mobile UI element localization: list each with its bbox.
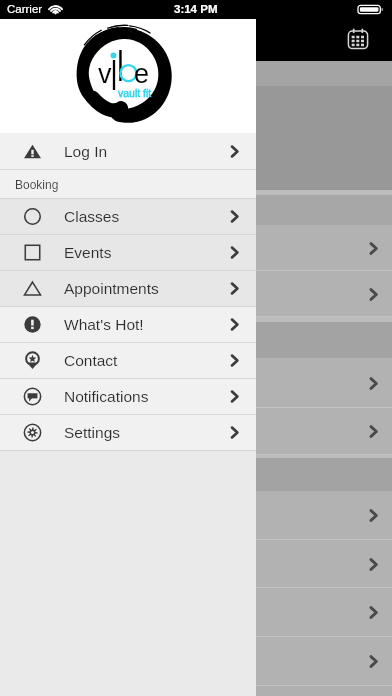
- other: Open: [369, 655, 378, 668]
- staticText: Events: [64, 244, 112, 261]
- staticText: Classes: [64, 208, 120, 225]
- other: Open: [369, 425, 378, 438]
- staticText: 3:14 PM: [174, 3, 218, 16]
- button[interactable]: Settings: [0, 415, 256, 450]
- button[interactable]: Open: [0, 271, 392, 317]
- staticText: Log In: [64, 143, 108, 160]
- button[interactable]: Events: [0, 235, 256, 270]
- button[interactable]: Log In: [0, 133, 256, 169]
- button[interactable]: Classes: [0, 199, 256, 234]
- button[interactable]: What's Hot!: [0, 307, 256, 342]
- other: Open: [369, 558, 378, 571]
- staticText: Contact: [64, 352, 118, 369]
- other: Open: [369, 377, 378, 390]
- button[interactable]: Contact: [0, 343, 256, 378]
- button[interactable]: Open: [0, 540, 392, 588]
- staticText: Notifications: [64, 388, 149, 405]
- other: Open: [369, 606, 378, 619]
- staticText: What's Hot!: [64, 316, 144, 333]
- other: Open: [369, 509, 378, 522]
- other: Calendar: [346, 27, 370, 51]
- other: Open: [369, 288, 378, 301]
- button[interactable]: Appointments: [0, 271, 256, 306]
- other: Open: [369, 242, 378, 255]
- button[interactable]: Open: [0, 588, 392, 637]
- button[interactable]: Notifications: [0, 379, 256, 414]
- button[interactable]: Open: [0, 408, 392, 455]
- staticText: Appointments: [64, 280, 159, 297]
- staticText: Carrier: [7, 3, 43, 16]
- staticText: Settings: [64, 424, 121, 441]
- staticText: vault fit: [118, 87, 152, 99]
- staticText: e: [134, 59, 150, 89]
- staticText: v: [98, 59, 112, 89]
- button[interactable]: Open: [0, 637, 392, 686]
- button[interactable]: Open: [0, 358, 392, 408]
- button[interactable]: Open: [0, 491, 392, 540]
- button[interactable]: Open: [0, 225, 392, 271]
- staticText: Booking: [15, 178, 59, 191]
